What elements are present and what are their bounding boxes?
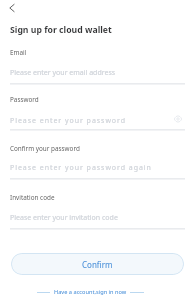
staticText: Confirm your password	[10, 144, 80, 153]
staticText: Please enter your password again	[10, 163, 152, 173]
staticText: Invitation code	[10, 193, 55, 202]
button[interactable]: Confirm	[11, 253, 184, 275]
staticText: Confirm	[82, 259, 113, 270]
button[interactable]: Have a account,sign in now	[54, 288, 127, 296]
staticText: Password	[10, 95, 39, 104]
staticText: Please enter your invitation code	[10, 213, 118, 223]
staticText: Please enter your password	[10, 116, 127, 126]
button[interactable]: Back	[2, 0, 22, 18]
staticText: Please enter your email address	[10, 68, 116, 78]
staticText: Email	[10, 48, 27, 57]
button[interactable]: Toggle password visibility	[171, 112, 185, 126]
staticText: Sign up for cloud wallet	[10, 24, 112, 36]
